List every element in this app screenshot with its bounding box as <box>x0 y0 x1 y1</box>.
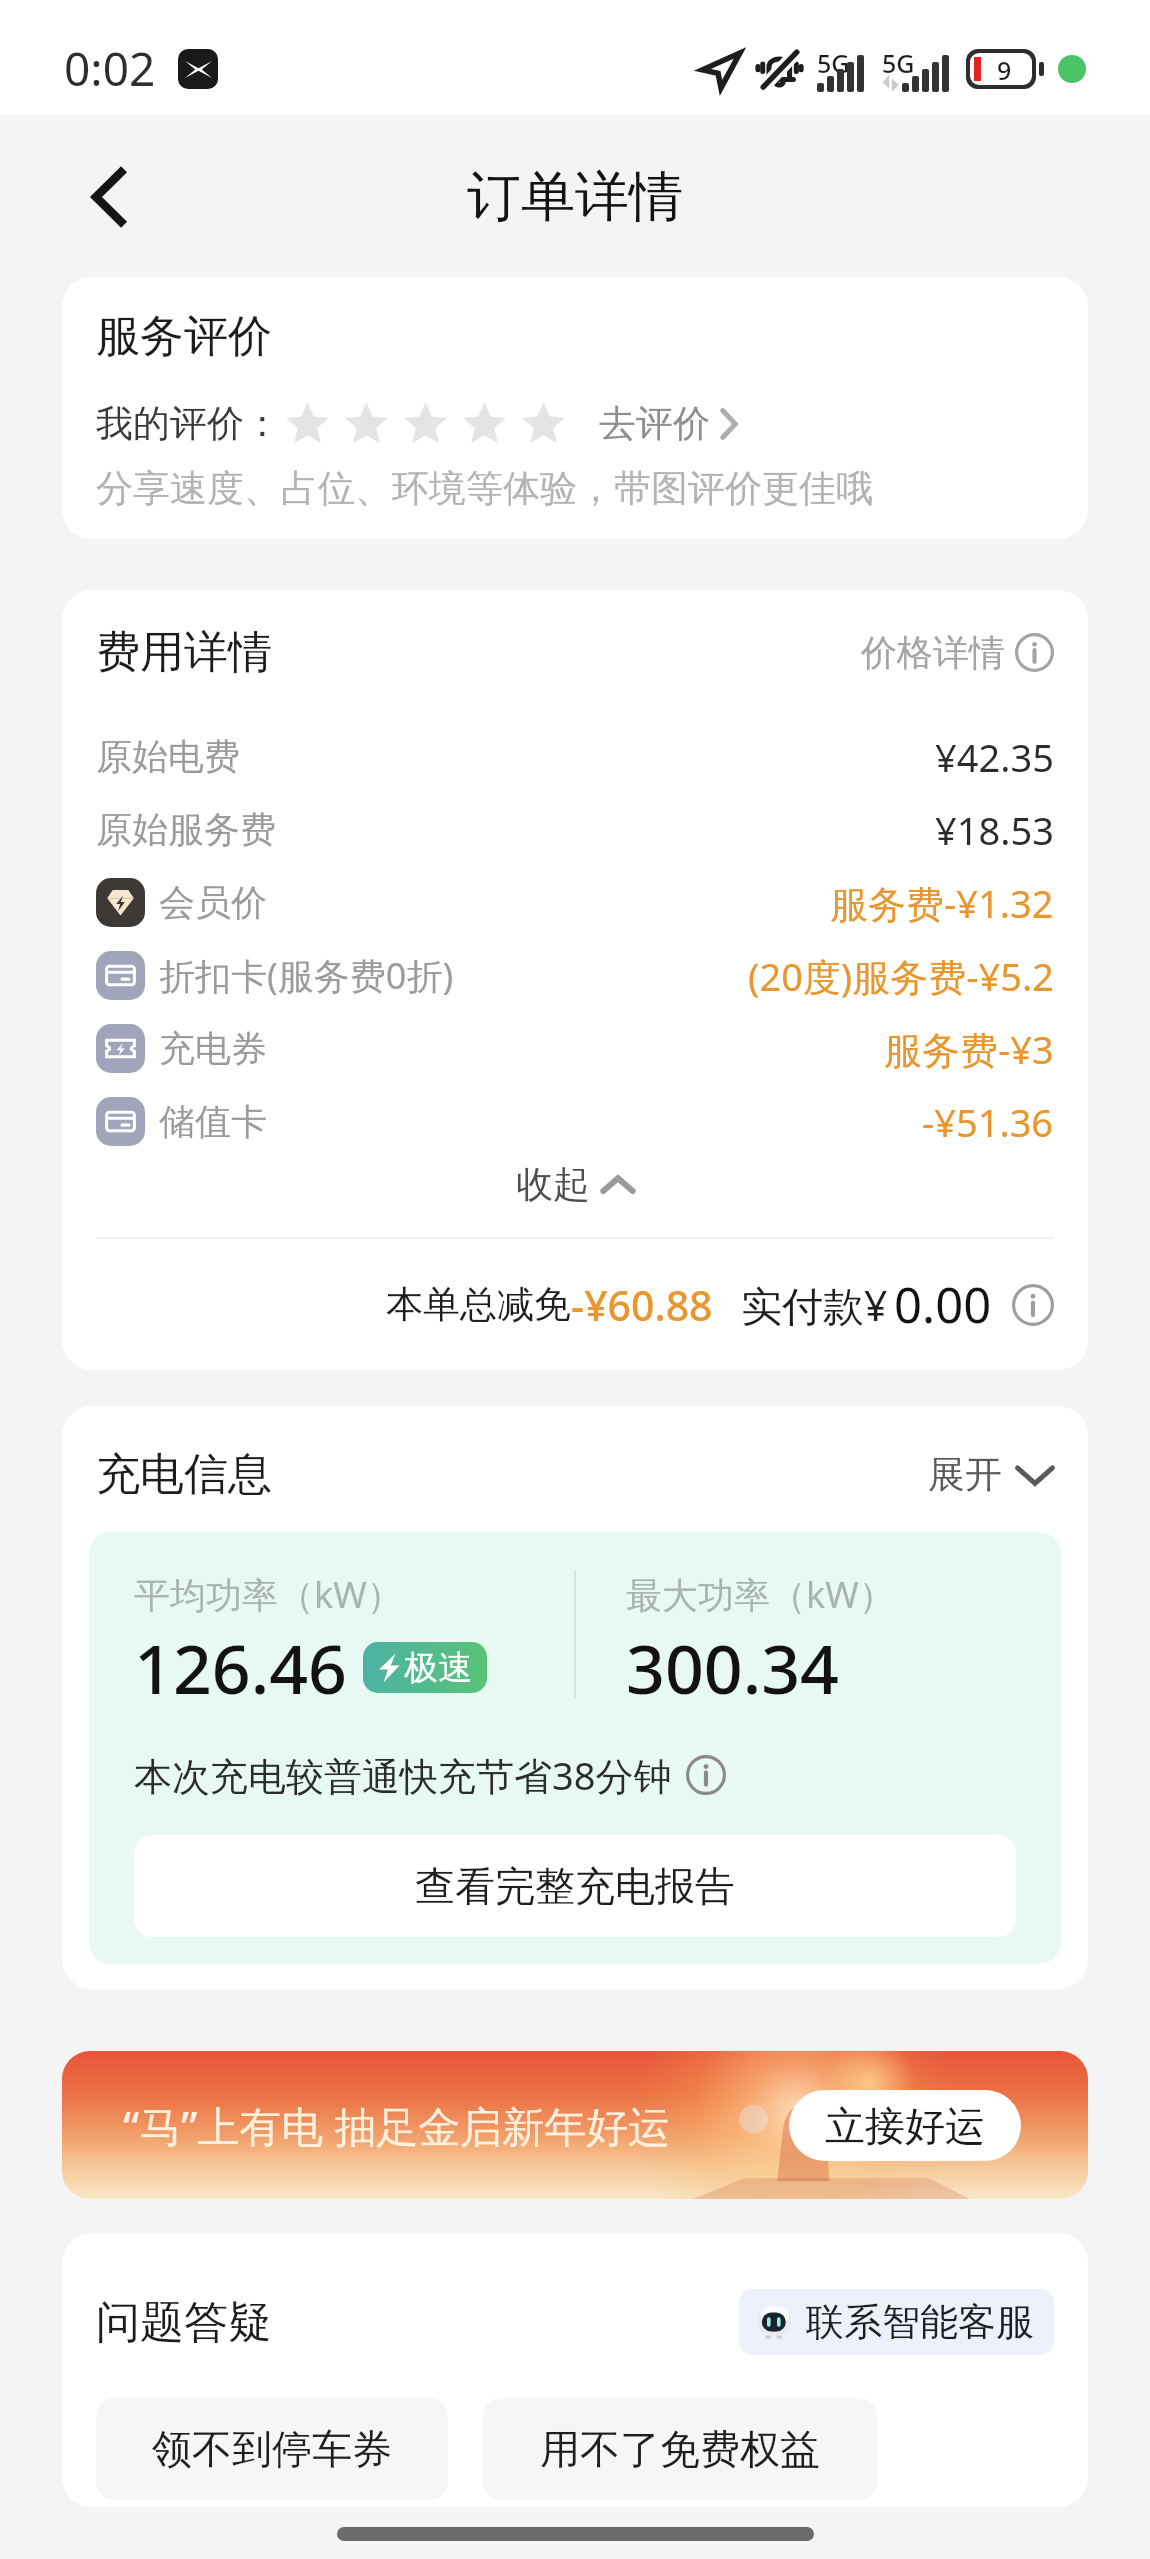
staticText: 我的评价： <box>96 400 281 447</box>
staticText: 5G <box>882 46 915 80</box>
staticText: 领不到停车券 <box>152 2424 392 2474</box>
staticText: 充电信息 <box>96 1447 272 1502</box>
staticText: 实付款¥ <box>741 1277 888 1333</box>
staticText: “马”上有电 抽足金启新年好运 <box>123 2097 671 2154</box>
button[interactable]: 联系智能客服 <box>739 2289 1054 2355</box>
button[interactable]: 收起 <box>96 1158 1054 1210</box>
staticText: 126.46 <box>134 1621 347 1714</box>
staticText: 本次充电较普通快充节省38分钟 <box>134 1749 672 1801</box>
staticText: 立接好运 <box>825 2101 985 2151</box>
staticText: 储值卡 <box>159 1099 267 1144</box>
staticText: 分享速度、占位、环境等体验，带图评价更佳哦 <box>96 465 873 512</box>
button[interactable]: 价格详情 <box>861 630 1054 675</box>
staticText: 问题答疑 <box>96 2295 272 2350</box>
staticText: 服务费-¥3 <box>884 1023 1054 1075</box>
staticText: 价格详情 <box>861 630 1005 675</box>
staticText: ¥18.53 <box>935 804 1054 856</box>
staticText: 原始服务费 <box>96 807 276 852</box>
button[interactable]: 领不到停车券 <box>96 2398 448 2500</box>
staticText: 9 <box>997 53 1012 85</box>
staticText: 会员价 <box>159 880 267 925</box>
staticText: -¥51.36 <box>922 1096 1054 1148</box>
button[interactable]: 展开 <box>928 1451 1054 1498</box>
staticText: (20度)服务费-¥5.2 <box>748 950 1054 1002</box>
staticText: 最大功率（kW） <box>626 1570 895 1619</box>
staticText: 原始电费 <box>96 734 240 779</box>
staticText: 5G <box>817 46 850 80</box>
button[interactable]: 查看完整充电报告 <box>134 1835 1016 1937</box>
staticText: 极速 <box>404 1646 472 1689</box>
staticText: 展开 <box>928 1451 1002 1498</box>
staticText: ¥42.35 <box>935 731 1054 783</box>
button[interactable]: 用不了免费权益 <box>483 2398 877 2500</box>
staticText: 0.00 <box>894 1271 992 1338</box>
button[interactable]: Back <box>58 147 158 247</box>
staticText: 折扣卡(服务费0折) <box>159 951 454 1000</box>
staticText: 订单详情 <box>467 163 683 231</box>
staticText: 费用详情 <box>96 625 272 680</box>
staticText: 服务费-¥1.32 <box>830 877 1054 929</box>
staticText: -¥60.88 <box>571 1277 713 1333</box>
staticText: 查看完整充电报告 <box>415 1861 735 1911</box>
staticText: 300.34 <box>626 1621 839 1714</box>
staticText: 本单总减免 <box>386 1281 571 1328</box>
staticText: 服务评价 <box>96 309 272 364</box>
staticText: 用不了免费权益 <box>540 2424 820 2474</box>
staticText: 去评价 <box>599 400 710 447</box>
staticText: 联系智能客服 <box>806 2298 1034 2346</box>
button[interactable]: 去评价 <box>599 400 738 447</box>
button[interactable]: “马”上有电 抽足金启新年好运 <box>62 2051 1088 2199</box>
staticText: 平均功率（kW） <box>134 1570 403 1619</box>
staticText: 充电券 <box>159 1026 267 1071</box>
staticText: 收起 <box>516 1161 590 1208</box>
staticText: 0:02 <box>64 37 156 100</box>
